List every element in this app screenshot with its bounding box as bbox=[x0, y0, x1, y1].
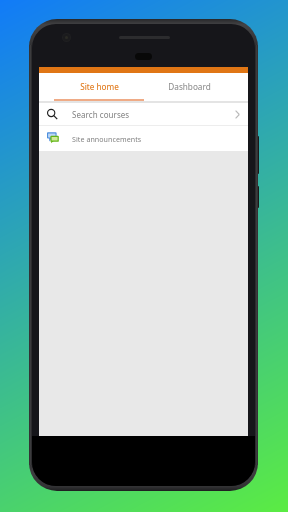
staticText: Site home bbox=[80, 81, 119, 92]
staticText: Search courses bbox=[72, 109, 130, 120]
button[interactable]: Site announcements bbox=[39, 126, 248, 151]
staticText: Site announcements bbox=[72, 134, 142, 144]
button[interactable]: Site home bbox=[54, 73, 144, 101]
staticText: Dashboard bbox=[168, 81, 211, 92]
button[interactable]: Dashboard bbox=[144, 73, 234, 101]
button[interactable]: Search courses bbox=[39, 103, 248, 125]
